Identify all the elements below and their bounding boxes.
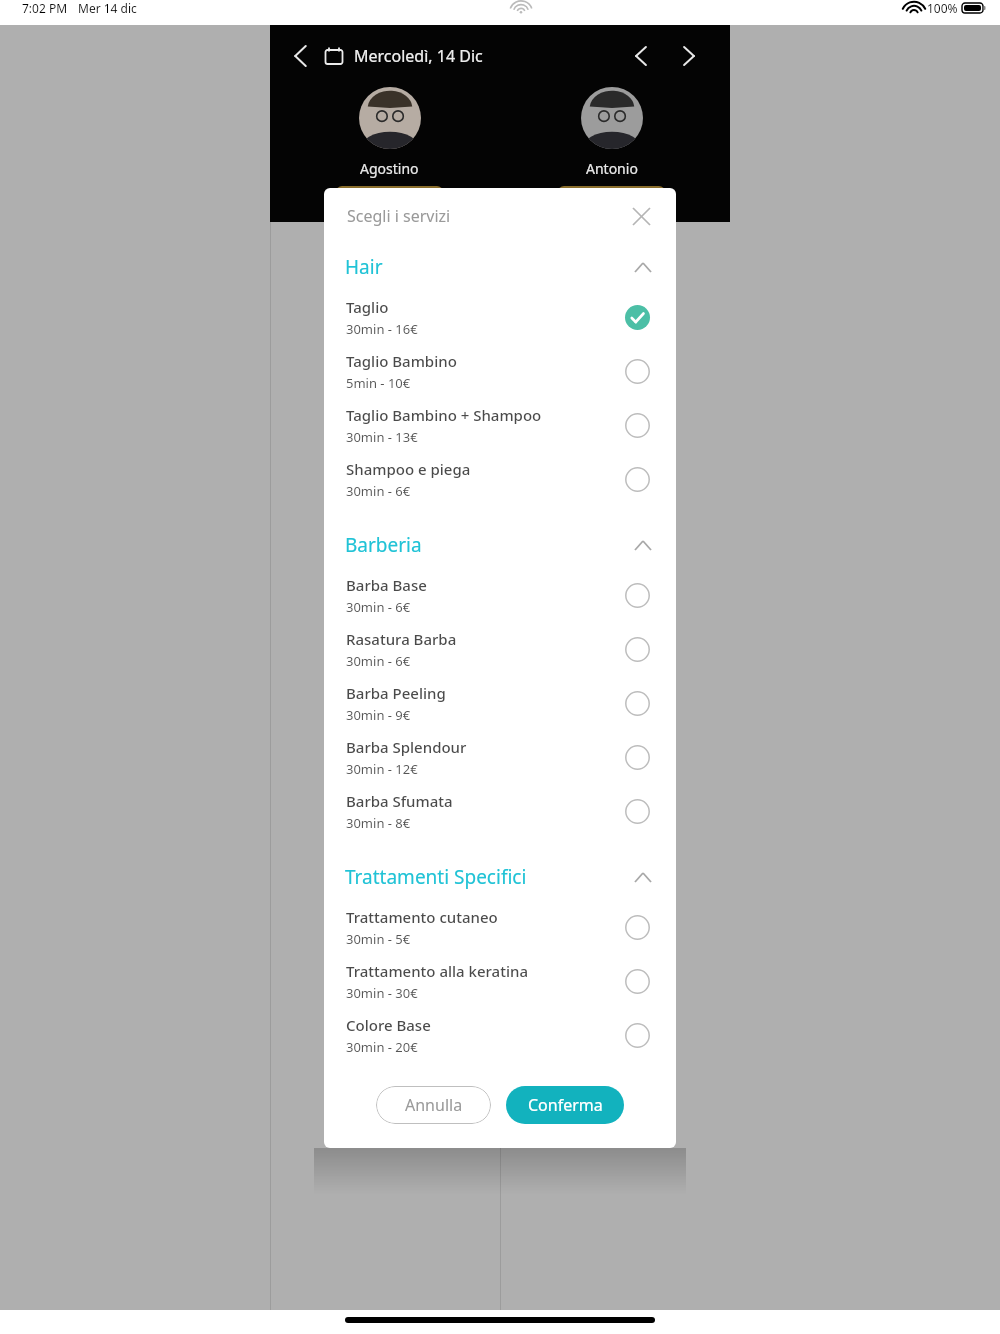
button[interactable] — [558, 186, 665, 216]
staticText: 30min - 6€ — [346, 652, 411, 670]
button[interactable]: Barba Base — [324, 568, 676, 622]
button[interactable]: Taglio Bambino + Shampoo — [324, 398, 676, 452]
button[interactable]: Trattamento cutaneo — [620, 910, 654, 944]
button[interactable]: Previous day — [622, 37, 660, 75]
button[interactable]: Trattamenti Specifici — [324, 854, 676, 900]
button[interactable]: Taglio — [324, 290, 676, 344]
staticText: Hair — [345, 254, 383, 280]
button[interactable]: Rasatura Barba — [620, 632, 654, 666]
button[interactable]: Barba Peeling — [324, 676, 676, 730]
button[interactable]: Barba Peeling — [620, 686, 654, 720]
staticText: Annulla — [405, 1094, 463, 1116]
staticText: Mer 14 dic — [78, 0, 137, 16]
staticText: Scegli i servizi — [347, 205, 451, 227]
staticText: Barba Sfumata — [346, 791, 453, 811]
button[interactable]: Trattamento alla keratina — [620, 964, 654, 998]
button[interactable]: Barba Sfumata — [324, 784, 676, 838]
staticText: Barba Peeling — [346, 683, 446, 703]
staticText: Conferma — [528, 1094, 603, 1116]
button[interactable]: Trattamento cutaneo — [324, 900, 676, 954]
staticText: Shampoo e piega — [346, 459, 471, 479]
staticText: Antonio — [586, 159, 638, 178]
staticText: Rasatura Barba — [346, 629, 457, 649]
staticText: 30min - 8€ — [346, 814, 411, 832]
staticText: 30min - 13€ — [346, 428, 418, 446]
button[interactable]: Barba Base — [620, 578, 654, 612]
button[interactable]: Taglio Bambino + Shampoo — [620, 408, 654, 442]
staticText: Trattamenti Specifici — [345, 864, 527, 890]
button[interactable]: Back — [280, 36, 320, 76]
staticText: 30min - 9€ — [346, 706, 411, 724]
button[interactable]: Trattamento alla keratina — [324, 954, 676, 1008]
staticText: 30min - 16€ — [346, 320, 418, 338]
button[interactable]: Rasatura Barba — [324, 622, 676, 676]
button[interactable]: Taglio Bambino — [324, 344, 676, 398]
button[interactable] — [336, 186, 443, 216]
button[interactable]: Annulla — [376, 1086, 491, 1124]
staticText: 30min - 6€ — [346, 482, 411, 500]
staticText: 30min - 12€ — [346, 760, 418, 778]
button[interactable]: Conferma — [506, 1086, 624, 1124]
staticText: 7:02 PM — [22, 0, 68, 16]
button[interactable]: Barba Sfumata — [620, 794, 654, 828]
button[interactable]: Barba Splendour — [324, 730, 676, 784]
button[interactable]: Hair — [324, 244, 676, 290]
staticText: Trattamento alla keratina — [346, 961, 528, 981]
button[interactable]: Taglio — [620, 300, 654, 334]
staticText: Barberia — [345, 532, 422, 558]
button[interactable]: Colore Base — [324, 1008, 676, 1062]
button[interactable]: Shampoo e piega — [620, 462, 654, 496]
staticText: Barba Base — [346, 575, 427, 595]
staticText: 30min - 20€ — [346, 1038, 418, 1056]
button[interactable]: Barberia — [324, 522, 676, 568]
button[interactable]: Close — [624, 199, 658, 233]
button[interactable]: Colore Base — [620, 1018, 654, 1052]
staticText: Taglio Bambino + Shampoo — [346, 405, 542, 425]
staticText: 30min - 5€ — [346, 930, 411, 948]
staticText: Taglio Bambino — [346, 351, 457, 371]
staticText: Taglio — [346, 297, 389, 317]
staticText: 100% — [927, 0, 958, 16]
staticText: 5min - 10€ — [346, 374, 411, 392]
staticText: 30min - 6€ — [346, 598, 411, 616]
button[interactable]: Next day — [670, 37, 708, 75]
staticText: 30min - 30€ — [346, 984, 418, 1002]
staticText: Colore Base — [346, 1015, 431, 1035]
button[interactable]: Barba Splendour — [620, 740, 654, 774]
staticText: Agostino — [360, 159, 419, 178]
button[interactable]: Taglio Bambino — [620, 354, 654, 388]
button[interactable]: Shampoo e piega — [324, 452, 676, 506]
staticText: Trattamento cutaneo — [346, 907, 498, 927]
staticText: Mercoledì, 14 Dic — [354, 45, 483, 67]
staticText: Barba Splendour — [346, 737, 467, 757]
